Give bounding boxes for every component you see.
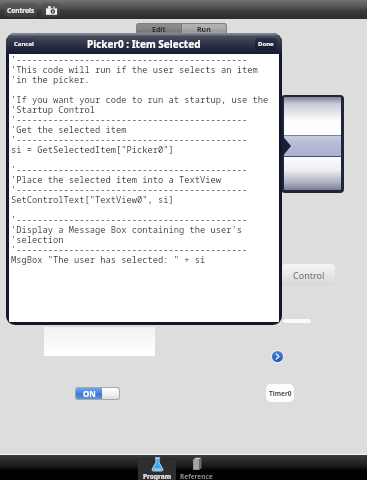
- staticText: Done: [258, 40, 274, 48]
- staticText: Cancel: [14, 40, 34, 48]
- button[interactable]: Controls: [4, 3, 37, 17]
- staticText: Run: [197, 25, 211, 35]
- staticText: ON: [83, 388, 96, 399]
- staticText: Controls: [7, 6, 35, 15]
- staticText: Reference: [180, 472, 213, 480]
- button[interactable]: More info: [272, 351, 283, 362]
- button[interactable]: Edit: [137, 24, 226, 36]
- button[interactable]: [44, 327, 155, 356]
- button[interactable]: ON: [76, 388, 119, 399]
- button[interactable]: Cancel: [9, 38, 38, 50]
- staticText: Control: [293, 269, 325, 281]
- staticText: '---------------------------------------…: [11, 55, 269, 265]
- staticText: Edit: [152, 25, 166, 35]
- button[interactable]: Camera: [42, 3, 60, 17]
- button[interactable]: Reference: [177, 457, 215, 480]
- button[interactable]: Done: [255, 38, 277, 50]
- staticText: Program: [143, 472, 171, 480]
- button[interactable]: [284, 97, 341, 190]
- staticText: Picker0 : Item Selected: [87, 37, 201, 51]
- button[interactable]: Timer0: [266, 384, 294, 402]
- staticText: Timer0: [269, 389, 292, 398]
- button[interactable]: Control: [282, 264, 335, 285]
- button[interactable]: Program: [138, 457, 176, 480]
